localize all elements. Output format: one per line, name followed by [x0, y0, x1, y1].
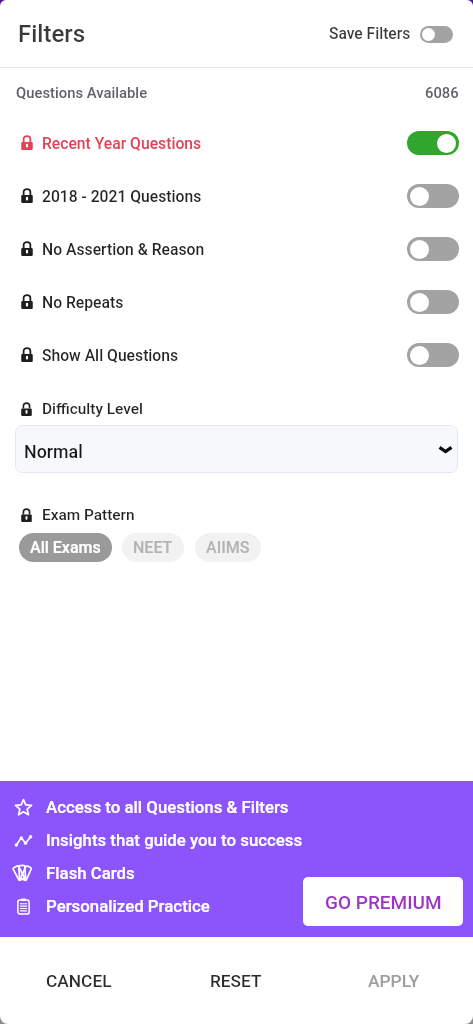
other: Expand difficulty level — [439, 441, 452, 457]
button[interactable]: Save Filters — [329, 25, 453, 43]
staticText: Show All Questions — [42, 346, 179, 364]
button[interactable]: Switch off — [407, 184, 459, 208]
staticText: No Assertion & Reason — [42, 240, 205, 258]
staticText: Insights that guide you to success — [46, 830, 303, 850]
staticText: Normal — [24, 441, 83, 462]
button[interactable]: Personalized Practice — [12, 889, 210, 922]
button[interactable]: Flash Cards — [12, 856, 135, 889]
staticText: APPLY — [368, 971, 420, 991]
button[interactable]: CANCEL — [0, 937, 157, 1024]
button[interactable]: No Assertion & Reason — [0, 222, 473, 275]
button[interactable]: Access to all Questions & Filters — [12, 790, 289, 823]
staticText: GO PREMIUM — [325, 891, 442, 913]
staticText: 2018 - 2021 Questions — [42, 187, 202, 205]
button[interactable]: RESET — [157, 937, 315, 1024]
button[interactable]: Switch off — [407, 343, 459, 367]
staticText: No Repeats — [42, 293, 124, 311]
button[interactable]: NEET — [122, 533, 184, 562]
button[interactable]: Switch off — [407, 237, 459, 261]
button[interactable]: Insights that guide you to success — [12, 823, 303, 856]
staticText: NEET — [133, 538, 173, 557]
button[interactable]: No Repeats — [0, 275, 473, 328]
button[interactable]: Switch on — [407, 131, 459, 155]
staticText: AIIMS — [206, 538, 250, 557]
staticText: CANCEL — [46, 971, 112, 991]
button[interactable]: AIIMS — [195, 533, 261, 562]
button[interactable]: Show All Questions — [0, 328, 473, 381]
button[interactable]: APPLY — [315, 937, 473, 1024]
staticText: Difficulty Level — [42, 400, 143, 418]
staticText: Recent Year Questions — [42, 134, 202, 152]
button[interactable]: 2018 - 2021 Questions — [0, 169, 473, 222]
staticText: Personalized Practice — [46, 896, 210, 916]
button[interactable]: Recent Year Questions — [0, 116, 473, 169]
staticText: All Exams — [30, 538, 101, 557]
staticText: Exam Pattern — [42, 506, 135, 524]
button[interactable]: Switch off — [420, 26, 453, 43]
staticText: 6086 — [425, 84, 459, 101]
button[interactable]: Switch off — [407, 290, 459, 314]
staticText: Filters — [18, 20, 86, 48]
button[interactable]: Normal — [15, 425, 458, 473]
button[interactable]: GO PREMIUM — [303, 877, 463, 926]
staticText: Questions Available — [16, 84, 148, 101]
staticText: Save Filters — [329, 25, 411, 43]
staticText: Flash Cards — [46, 863, 135, 883]
staticText: RESET — [210, 971, 262, 991]
button[interactable]: All Exams — [19, 533, 112, 562]
staticText: Access to all Questions & Filters — [46, 797, 289, 817]
